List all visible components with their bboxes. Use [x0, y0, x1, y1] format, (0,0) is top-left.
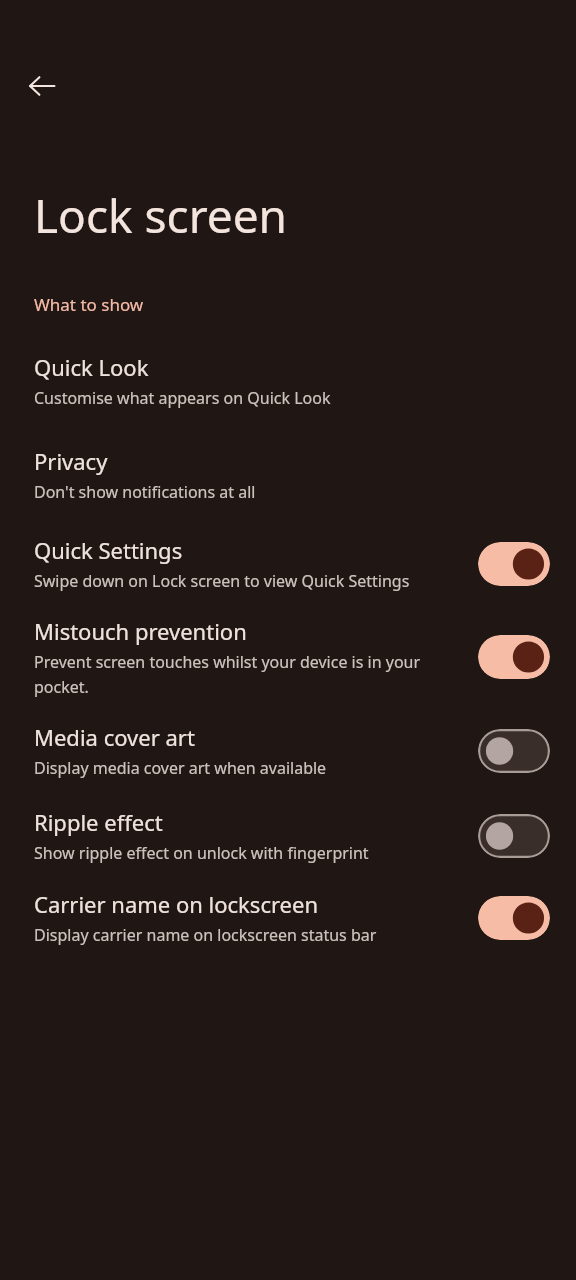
staticText: Lock screen — [34, 184, 288, 247]
staticText: Display carrier name on lockscreen statu… — [34, 924, 444, 946]
staticText: Mistouch prevention — [34, 616, 247, 646]
staticText: Prevent screen touches whilst your devic… — [34, 651, 449, 697]
button[interactable]: Media cover art — [0, 722, 576, 779]
staticText: Quick Settings — [34, 535, 183, 565]
staticText: Carrier name on lockscreen — [34, 889, 319, 919]
button[interactable]: Quick Look — [0, 352, 576, 409]
staticText: Media cover art — [34, 722, 195, 752]
button[interactable]: On — [478, 896, 550, 940]
button[interactable]: Off — [478, 814, 550, 858]
button[interactable]: Off — [478, 729, 550, 773]
button[interactable]: On — [478, 635, 550, 679]
staticText: Swipe down on Lock screen to view Quick … — [34, 570, 449, 592]
staticText: Ripple effect — [34, 807, 163, 837]
staticText: Show ripple effect on unlock with finger… — [34, 842, 374, 864]
button[interactable]: Carrier name on lockscreen — [0, 889, 576, 946]
button[interactable]: On — [478, 542, 550, 586]
button[interactable]: Ripple effect — [0, 807, 576, 864]
button[interactable]: Back — [14, 58, 70, 114]
staticText: Display media cover art when available — [34, 757, 327, 779]
staticText: Don't show notifications at all — [34, 481, 256, 503]
staticText: Privacy — [34, 446, 108, 476]
button[interactable]: Privacy — [0, 446, 576, 503]
staticText: Quick Look — [34, 352, 149, 382]
staticText: Customise what appears on Quick Look — [34, 387, 331, 409]
button[interactable]: Mistouch prevention — [0, 616, 576, 697]
button[interactable]: Quick Settings — [0, 535, 576, 592]
staticText: What to show — [34, 293, 144, 316]
